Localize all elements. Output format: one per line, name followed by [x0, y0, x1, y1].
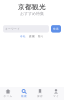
staticText: 検索 [53, 27, 59, 30]
button[interactable]: 庭園 [29, 35, 35, 38]
button[interactable]: ホーム [0, 89, 16, 98]
staticText: 庭園 [29, 35, 35, 38]
button[interactable]: マイ [48, 89, 64, 98]
button[interactable]: 祭り [38, 35, 44, 38]
button[interactable]: 検索 [16, 89, 32, 98]
button[interactable]: キーワード [3, 25, 49, 33]
button[interactable]: 寺社 [20, 35, 26, 38]
staticText: 検索 [21, 95, 27, 98]
staticText: 京都観光 [18, 3, 46, 11]
button[interactable]: 保存 [32, 89, 48, 98]
staticText: 寺社 [20, 35, 26, 38]
staticText: キーワード [5, 27, 20, 30]
staticText: 祭り [38, 35, 44, 38]
staticText: 保存 [37, 95, 43, 98]
staticText: おすすめ特集 [20, 11, 44, 16]
staticText: ホーム [3, 95, 12, 98]
button[interactable]: 検索 [51, 25, 61, 33]
staticText: マイ [53, 95, 59, 98]
